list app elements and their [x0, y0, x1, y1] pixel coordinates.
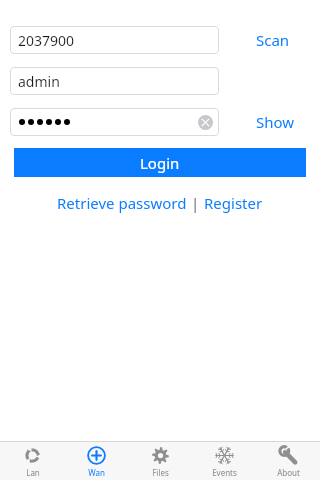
button[interactable]: Clear password — [10, 108, 219, 136]
staticText: Login — [140, 153, 180, 173]
staticText: Events — [212, 467, 237, 478]
staticText: About — [277, 467, 300, 478]
button[interactable]: Files — [128, 442, 192, 480]
button[interactable]: Register — [204, 193, 263, 213]
staticText: Files — [152, 467, 169, 478]
button[interactable]: Lan — [0, 442, 64, 480]
button[interactable]: Retrieve password — [57, 193, 187, 213]
staticText: Show — [256, 112, 295, 132]
button[interactable]: About — [256, 442, 320, 480]
button[interactable]: Show — [240, 108, 310, 136]
staticText: Retrieve password — [57, 193, 187, 213]
button[interactable]: admin — [10, 67, 219, 95]
button[interactable]: Clear password — [198, 115, 213, 130]
staticText: Register — [204, 193, 263, 213]
staticText: 2037900 — [18, 31, 75, 50]
staticText: admin — [18, 72, 60, 91]
staticText: Scan — [256, 30, 290, 50]
staticText: Wan — [88, 467, 105, 478]
staticText: Lan — [26, 467, 40, 478]
button[interactable]: Login — [14, 148, 306, 177]
staticText: | — [187, 193, 204, 213]
button[interactable]: Scan — [240, 26, 306, 54]
button[interactable]: 2037900 — [10, 26, 219, 54]
button[interactable]: Events — [192, 442, 256, 480]
button[interactable]: Wan — [64, 442, 128, 480]
